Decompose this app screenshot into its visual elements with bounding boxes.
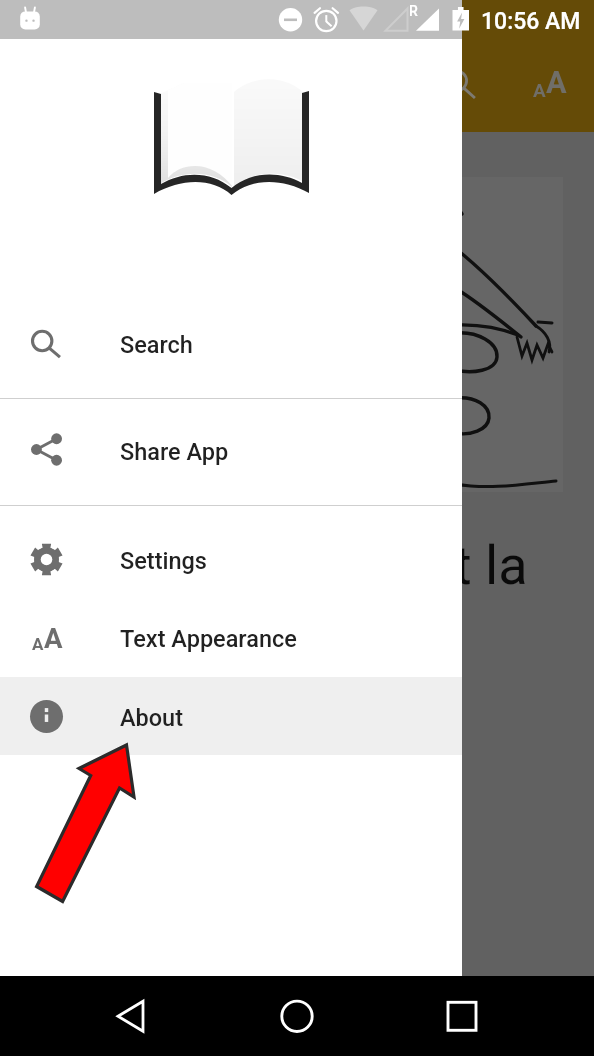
staticText: t la <box>454 534 528 597</box>
button[interactable]: A <box>0 598 462 676</box>
button[interactable]: Home <box>263 976 331 1056</box>
staticText: R <box>409 3 418 19</box>
staticText: Text Appearance <box>120 625 297 653</box>
button[interactable]: Search <box>431 54 489 112</box>
staticText: A <box>546 65 567 101</box>
staticText: A <box>533 79 546 101</box>
staticText: Share App <box>120 438 229 466</box>
staticText: Search <box>120 331 193 359</box>
button[interactable]: Share App <box>0 396 462 503</box>
staticText: A <box>32 634 44 654</box>
staticText: Settings <box>120 547 207 575</box>
staticText: A <box>44 622 63 654</box>
button[interactable]: Back <box>97 976 165 1056</box>
button[interactable]: About <box>0 677 462 755</box>
button[interactable]: Recents <box>428 976 496 1056</box>
button[interactable]: Settings <box>0 520 462 598</box>
staticText: About <box>120 704 184 732</box>
button[interactable]: Text Appearance <box>521 54 579 112</box>
staticText: 10:56 AM <box>481 8 581 35</box>
button[interactable]: Search <box>0 286 462 400</box>
